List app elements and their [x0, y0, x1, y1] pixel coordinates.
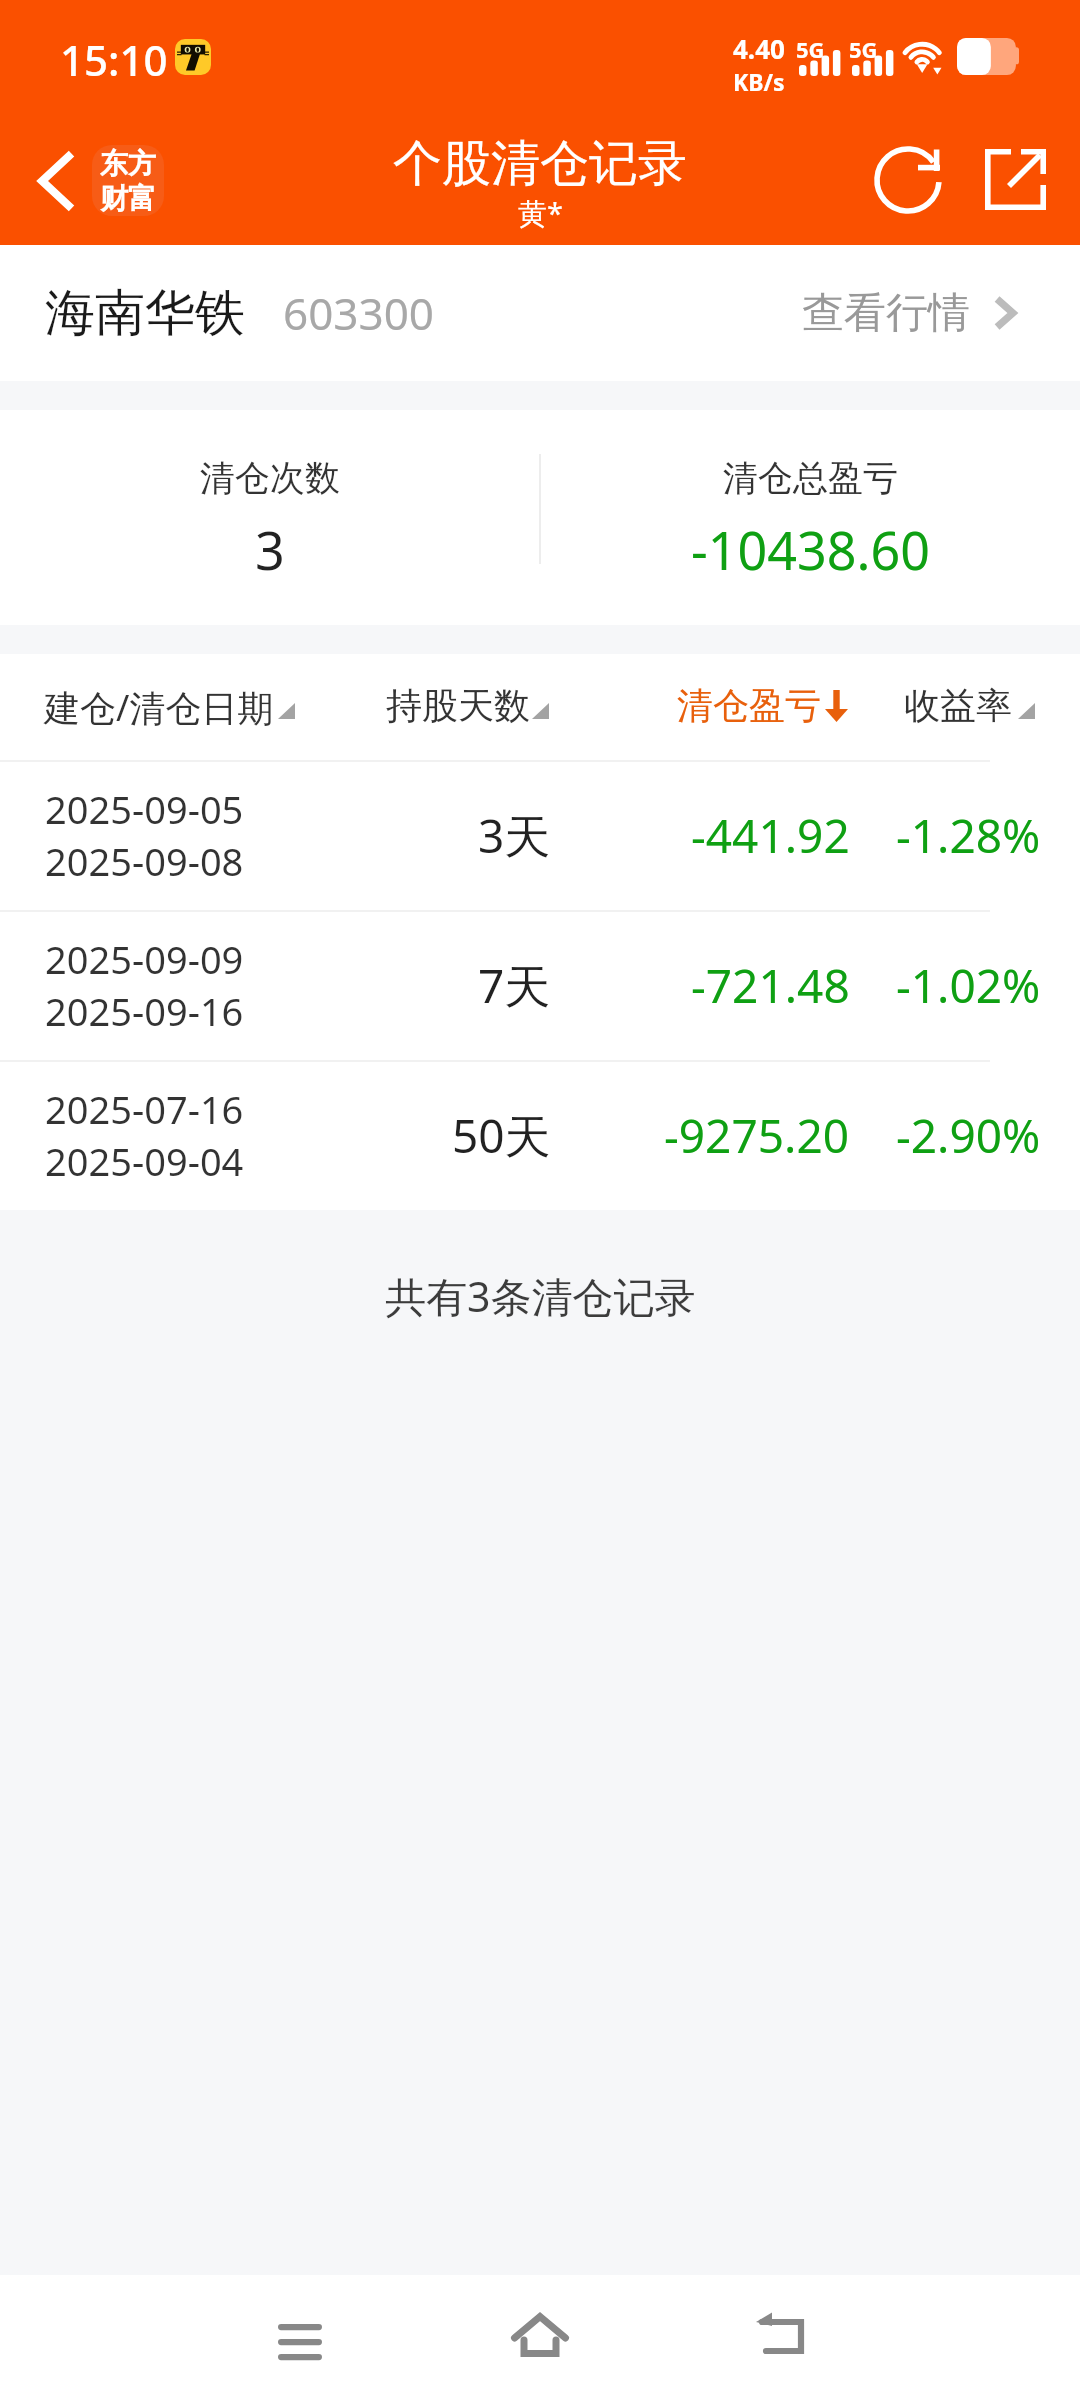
- button[interactable]: Home: [480, 2275, 600, 2395]
- staticText: 5G: [796, 34, 825, 64]
- staticText: -1.28%: [896, 804, 1041, 867]
- button[interactable]: 2025-09-05: [0, 760, 1080, 910]
- staticText: -721.48: [691, 954, 850, 1017]
- staticText: 黄*: [518, 193, 563, 233]
- staticText: -1.02%: [896, 954, 1041, 1017]
- staticText: 2025-09-04: [45, 1135, 244, 1187]
- staticText: 2025-09-05: [45, 783, 244, 835]
- staticText: -9275.20: [664, 1104, 850, 1167]
- staticText: 2025-09-09: [45, 933, 244, 985]
- staticText: 个股清仓记录: [393, 133, 687, 195]
- button[interactable]: Back: [14, 136, 96, 226]
- button[interactable]: East Money home: [92, 145, 164, 216]
- button[interactable]: 持股天数: [376, 668, 520, 746]
- staticText: 5G: [849, 34, 878, 64]
- button[interactable]: 建仓/清仓日期: [34, 668, 264, 746]
- staticText: 海南华铁: [45, 282, 245, 345]
- staticText: 2025-09-08: [45, 835, 244, 887]
- staticText: 收益率: [904, 683, 1012, 728]
- staticText: 东方: [100, 146, 156, 181]
- staticText: 清仓总盈亏: [723, 456, 898, 500]
- staticText: 7天: [478, 954, 551, 1017]
- button[interactable]: Share: [969, 133, 1062, 226]
- button[interactable]: 收益率: [894, 668, 1002, 746]
- staticText: 清仓次数: [200, 456, 340, 500]
- staticText: 603300: [283, 283, 435, 343]
- staticText: -10438.60: [691, 514, 930, 585]
- staticText: 2025-07-16: [45, 1083, 244, 1135]
- staticText: KB/s: [733, 66, 785, 97]
- staticText: 共有3条清仓记录: [385, 1268, 696, 1324]
- button[interactable]: 2025-07-16: [0, 1060, 1080, 1210]
- staticText: 15:10: [60, 31, 168, 88]
- button[interactable]: Back: [720, 2274, 840, 2394]
- staticText: 持股天数: [386, 683, 530, 728]
- staticText: 查看行情: [802, 287, 970, 340]
- staticText: 3: [255, 514, 285, 585]
- staticText: 3天: [478, 804, 551, 867]
- staticText: -2.90%: [896, 1104, 1041, 1167]
- button[interactable]: 海南华铁: [0, 245, 1080, 381]
- staticText: 清仓盈亏: [677, 683, 821, 728]
- staticText: 建仓/清仓日期: [44, 683, 274, 732]
- button[interactable]: 2025-09-09: [0, 910, 1080, 1060]
- staticText: 2025-09-16: [45, 985, 244, 1037]
- staticText: 4.40: [733, 31, 785, 66]
- staticText: 50天: [452, 1104, 551, 1167]
- staticText: -441.92: [691, 804, 850, 867]
- staticText: 财富: [100, 181, 156, 216]
- button[interactable]: Refresh: [860, 133, 954, 227]
- button[interactable]: Recent apps: [240, 2282, 360, 2400]
- button[interactable]: 清仓盈亏: [667, 668, 811, 746]
